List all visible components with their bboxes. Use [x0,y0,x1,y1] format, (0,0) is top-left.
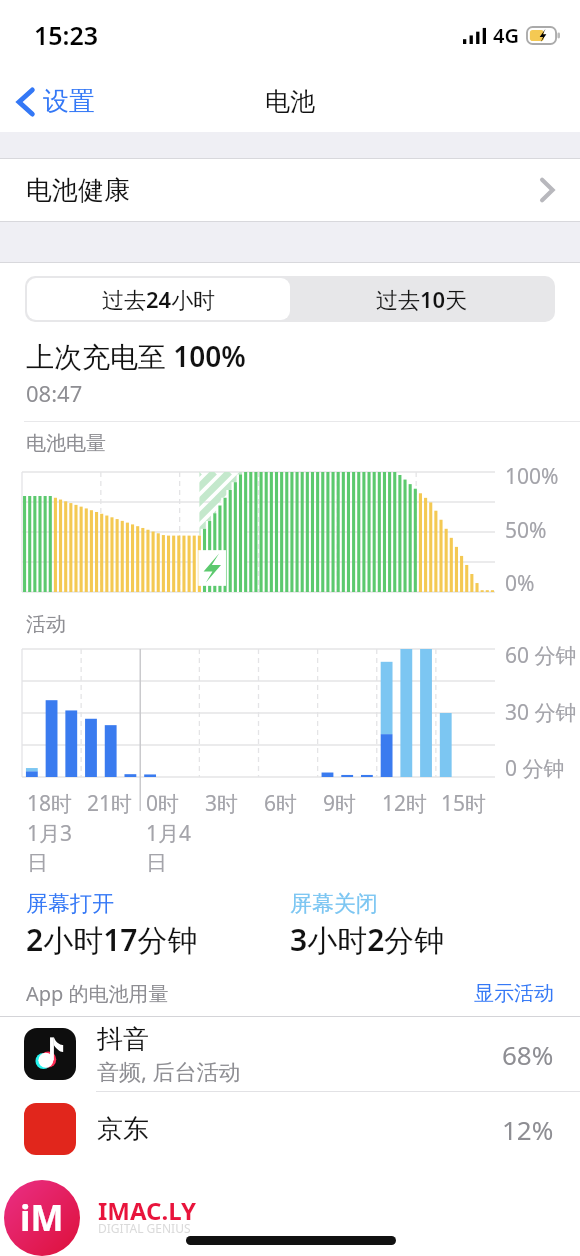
staticText: iM [20,1194,64,1242]
staticText: 0时 [146,789,180,818]
staticText: 设置 [43,85,95,118]
button[interactable]: 京东 [0,1092,580,1166]
staticText: 68% [502,1037,554,1072]
staticText: 3时 [205,789,239,818]
staticText: 100% [505,462,559,491]
staticText: 过去10天 [376,284,468,314]
staticText: 音频, 后台活动 [97,1056,241,1086]
staticText: 0% [505,569,535,598]
staticText: 4G [493,22,519,49]
staticText: 1月3日 [27,819,82,876]
staticText: 15:23 [34,18,99,52]
staticText: App 的电池用量 [26,980,169,1007]
staticText: 活动 [26,612,66,637]
staticText: 12% [502,1112,554,1147]
staticText: 屏幕关闭 [290,890,378,918]
button[interactable]: 过去24小时 [27,278,290,320]
staticText: 12时 [382,789,428,818]
staticText: 3小时2分钟 [290,919,445,960]
staticText: 08:47 [26,378,83,408]
other: 抖音 [24,1028,76,1080]
staticText: 屏幕打开 [26,890,114,918]
staticText: 18时 [27,789,73,818]
staticText: 1月4日 [146,819,200,876]
staticText: 抖音 [97,1023,149,1056]
staticText: DIGITAL GENIUS [98,1220,191,1236]
staticText: 电池电量 [26,431,106,456]
staticText: IMAC.LY [98,1194,196,1227]
staticText: 显示活动 [474,981,554,1006]
staticText: 过去24小时 [102,284,216,314]
staticText: 京东 [97,1113,149,1146]
staticText: 21时 [87,789,133,818]
button[interactable]: 抖音 [0,1017,580,1091]
staticText: 上次充电至 100% [26,337,246,375]
staticText: 6时 [264,789,298,818]
staticText: 50% [505,516,547,545]
button[interactable]: 过去10天 [290,278,553,320]
staticText: 15时 [441,789,487,818]
staticText: 0 分钟 [505,754,565,783]
button[interactable]: 显示活动 [474,981,554,1006]
staticText: 30 分钟 [505,698,577,727]
staticText: 60 分钟 [505,641,577,670]
staticText: 电池 [265,86,315,117]
button[interactable]: 设置 [12,80,100,123]
staticText: 2小时17分钟 [26,919,198,960]
staticText: 9时 [323,789,357,818]
button[interactable]: 电池健康 [0,158,580,222]
staticText: 电池健康 [26,174,130,207]
